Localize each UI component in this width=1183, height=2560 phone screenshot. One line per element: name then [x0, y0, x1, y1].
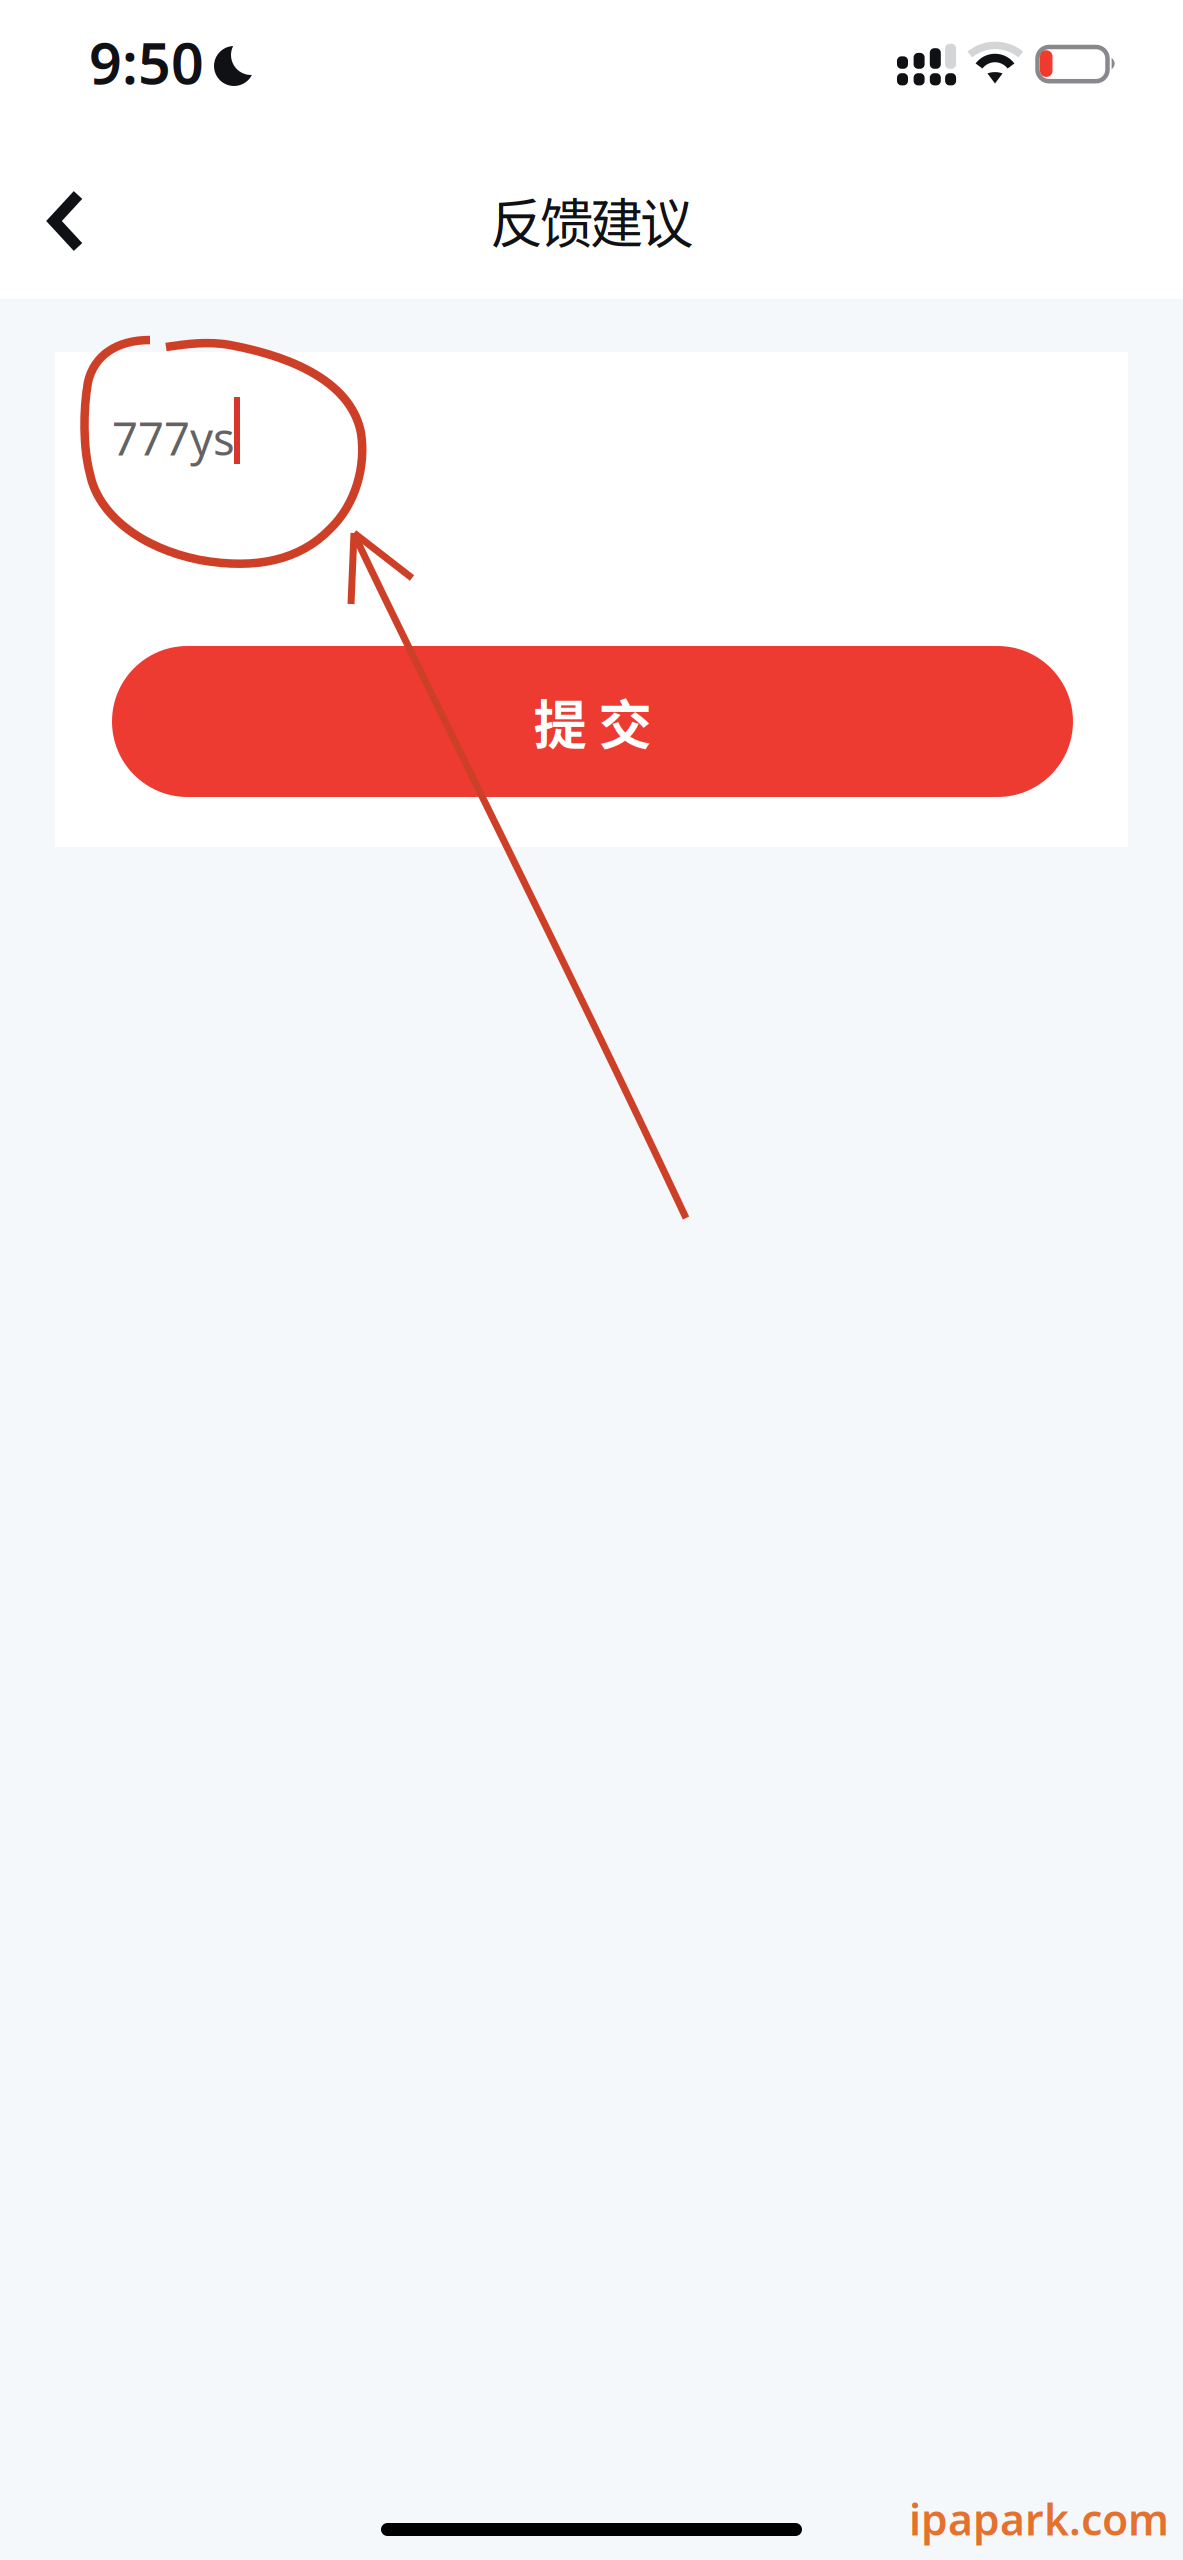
staticText: ipapark.com — [909, 2491, 1169, 2547]
staticText: 9:50 — [89, 24, 204, 100]
button[interactable]: Back — [15, 157, 133, 285]
staticText: 反馈建议 — [490, 181, 693, 259]
staticText: 提 交 — [533, 683, 651, 760]
button[interactable]: 提 交 — [112, 646, 1073, 797]
staticText: 777ys — [112, 408, 235, 468]
